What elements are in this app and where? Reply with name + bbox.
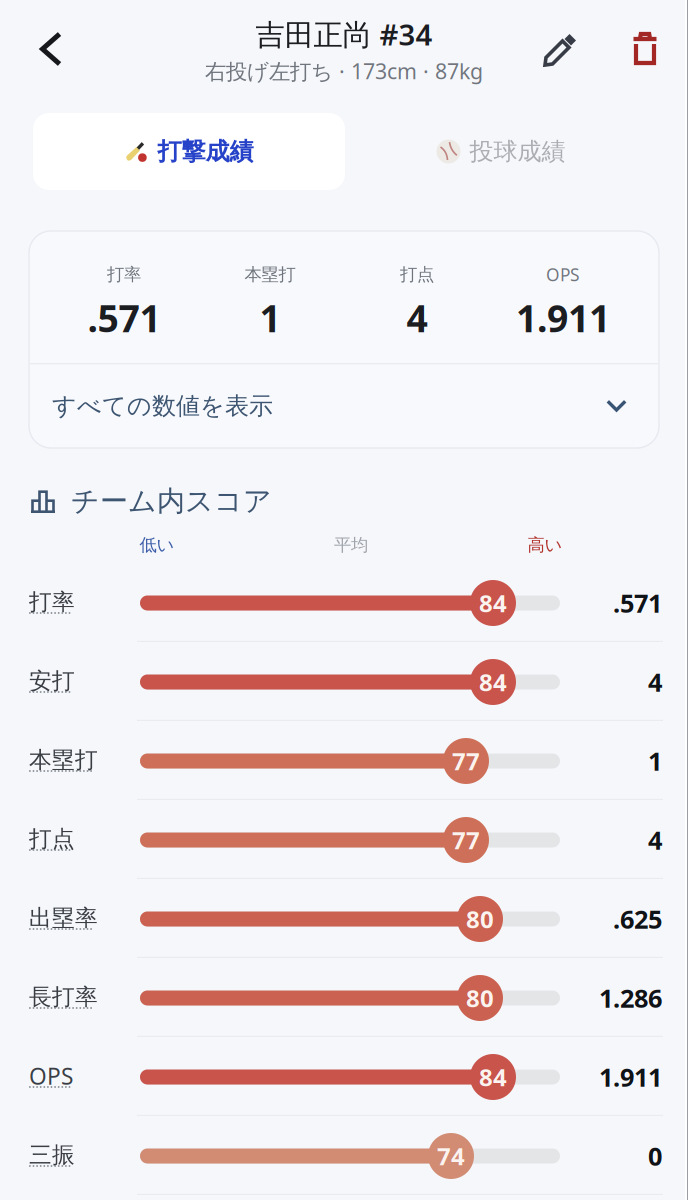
button[interactable]: 投球成績 <box>345 113 657 190</box>
staticText: 長打率 <box>29 983 98 1011</box>
staticText: 80 <box>466 903 494 935</box>
staticText: すべての数値を表示 <box>52 391 273 421</box>
staticText: 打点 <box>400 264 434 285</box>
staticText: 投球成績 <box>469 137 565 166</box>
button[interactable]: すべての数値を表示 <box>29 364 659 448</box>
staticText: 1 <box>648 744 662 778</box>
staticText: 安打 <box>29 667 75 695</box>
staticText: 打率 <box>29 588 75 616</box>
staticText: OPS <box>546 263 580 286</box>
staticText: 74 <box>437 1140 465 1172</box>
staticText: チーム内スコア <box>71 484 272 518</box>
staticText: 打撃成績 <box>157 137 253 166</box>
button[interactable]: 戻る <box>10 8 92 90</box>
button[interactable]: 編集 <box>528 16 594 82</box>
staticText: 0 <box>648 1139 662 1173</box>
staticText: 1.911 <box>599 1060 662 1094</box>
staticText: 77 <box>452 745 480 777</box>
staticText: 出塁率 <box>29 904 98 932</box>
staticText: 低い <box>139 534 174 556</box>
staticText: 1.286 <box>599 981 662 1015</box>
staticText: 高い <box>527 534 562 556</box>
staticText: 84 <box>479 587 507 619</box>
staticText: 84 <box>479 1061 507 1093</box>
staticText: 打率 <box>107 264 141 285</box>
staticText: 平均 <box>334 534 368 556</box>
staticText: 4 <box>648 823 662 857</box>
staticText: 77 <box>452 824 480 856</box>
staticText: 打点 <box>29 825 75 853</box>
staticText: 80 <box>466 982 494 1014</box>
staticText: OPS <box>29 1061 73 1091</box>
staticText: 4 <box>648 665 662 699</box>
staticText: 本塁打 <box>244 264 295 285</box>
staticText: 本塁打 <box>29 746 98 774</box>
staticText: 右投げ左打ち · 173cm · 87kg <box>205 57 483 85</box>
button[interactable]: 打撃成績 <box>33 113 345 190</box>
staticText: 84 <box>479 666 507 698</box>
staticText: .625 <box>613 902 662 936</box>
staticText: 三振 <box>29 1141 75 1169</box>
staticText: 吉田正尚 #34 <box>255 14 432 53</box>
button[interactable]: 削除 <box>612 16 678 82</box>
staticText: 1.911 <box>516 293 610 342</box>
staticText: .571 <box>87 293 160 342</box>
staticText: 4 <box>406 293 427 342</box>
staticText: 1 <box>259 293 280 342</box>
staticText: .571 <box>613 586 662 620</box>
